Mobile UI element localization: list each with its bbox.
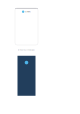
staticText: acme inc (25, 11, 31, 13)
staticText: terms · privacy · help · status (18, 49, 35, 51)
